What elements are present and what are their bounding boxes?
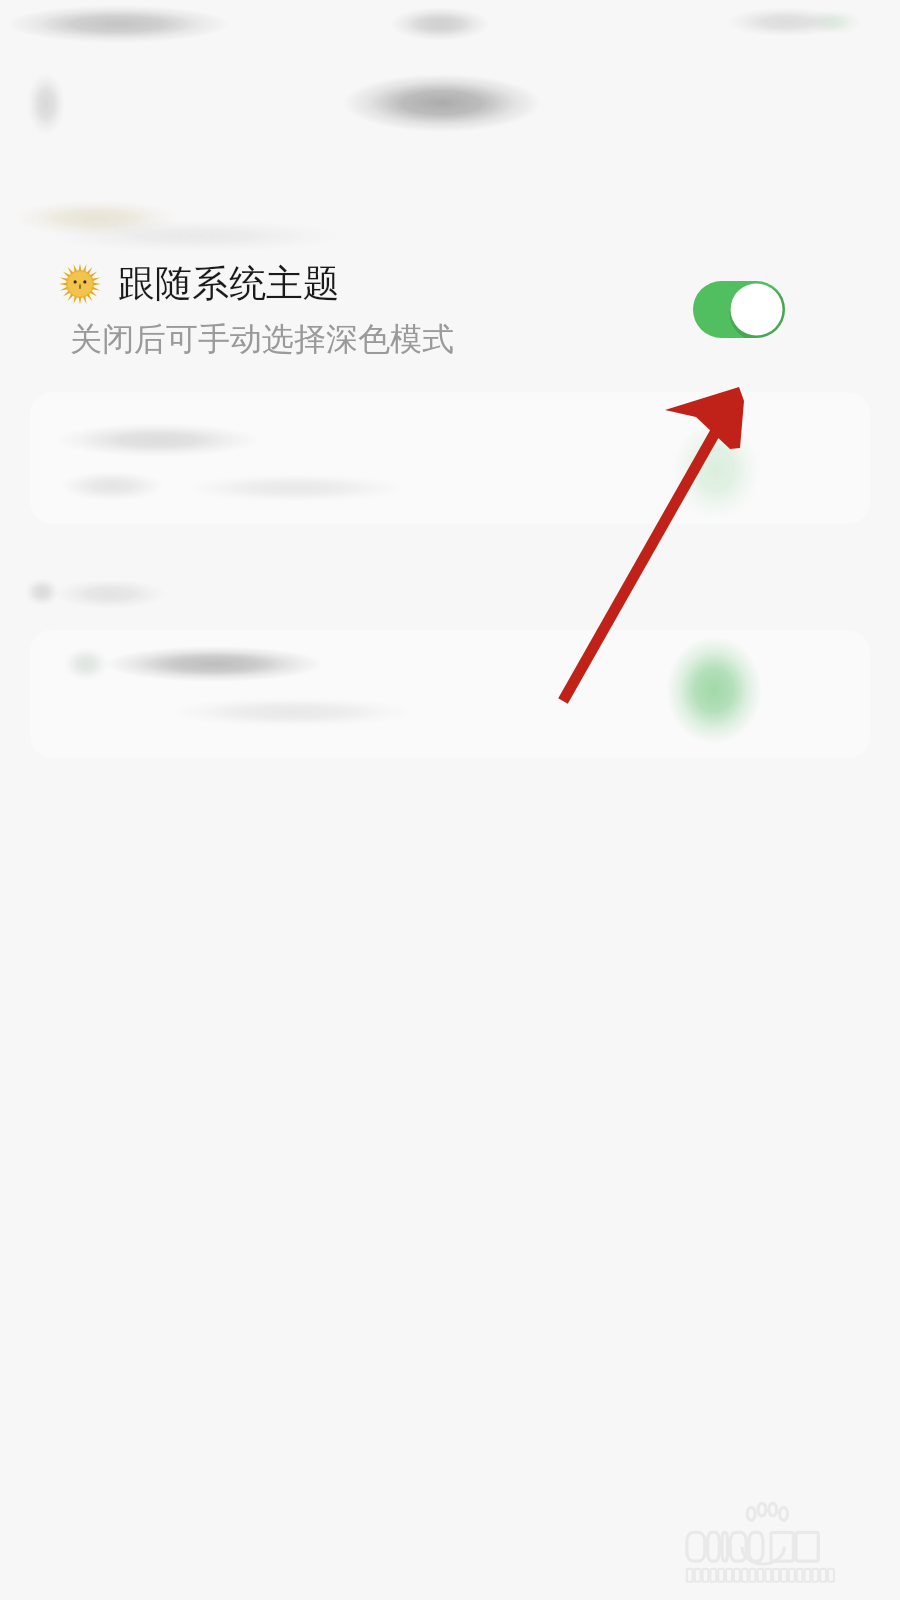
- button[interactable]: 跟随系统主题: [0, 246, 660, 370]
- staticText: 关闭后可手动选择深色模式: [70, 319, 454, 359]
- staticText: 跟随系统主题: [118, 260, 340, 307]
- button[interactable]: 跟随系统主题开关，已开启: [693, 281, 785, 338]
